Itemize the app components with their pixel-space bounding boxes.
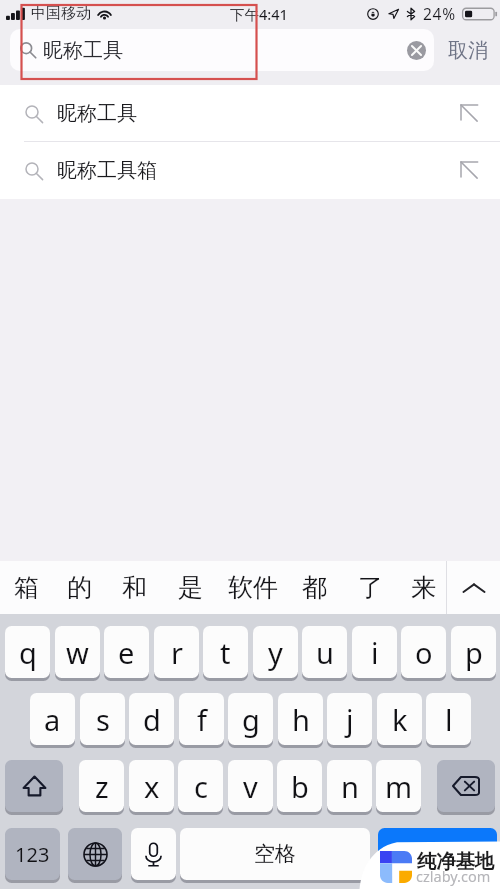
button[interactable]: 空格 [180,828,370,880]
button[interactable]: e [104,626,149,678]
button[interactable]: o [401,626,446,678]
staticText: w [66,633,89,672]
staticText: 都 [302,572,327,603]
button[interactable]: f [179,693,224,745]
button[interactable]: j [327,693,372,745]
staticText: 搜索 [417,841,459,867]
staticText: i [371,633,379,672]
button[interactable]: t [203,626,248,678]
staticText: h [292,700,310,739]
staticText: 了 [358,572,383,603]
staticText: u [316,633,334,672]
button[interactable]: Switch language [68,828,122,880]
button[interactable]: 的 [61,561,97,614]
button[interactable]: Shift [5,760,63,812]
button[interactable]: 都 [296,561,332,614]
staticText: n [341,767,359,806]
staticText: c [194,767,208,806]
button[interactable]: 123 [5,828,60,880]
staticText: 昵称工具 [57,101,137,126]
staticText: s [96,700,110,739]
button[interactable]: 取消 [448,29,500,71]
staticText: a [44,700,61,739]
staticText: f [197,700,207,739]
staticText: g [242,700,260,739]
staticText: 来 [411,572,436,603]
button[interactable]: a [30,693,75,745]
staticText: 24% [423,3,456,24]
button[interactable]: n [327,760,372,812]
staticText: 纯净基地 [417,849,494,874]
staticText: 下午4:41 [230,4,288,24]
button[interactable]: i [352,626,397,678]
staticText: q [19,633,37,672]
button[interactable]: Search [378,828,497,880]
staticText: m [385,767,413,806]
staticText: x [144,767,160,806]
button[interactable]: 昵称工具箱 [0,142,500,199]
staticText: 中国移动 [31,4,91,23]
button[interactable]: 来 [405,561,441,614]
button[interactable]: b [277,760,322,812]
button[interactable]: w [55,626,100,678]
staticText: o [415,633,433,672]
button[interactable]: Clear text [407,41,426,60]
staticText: 箱 [14,572,39,603]
button[interactable]: 了 [352,561,388,614]
staticText: 软件 [228,572,278,603]
button[interactable]: m [376,760,421,812]
staticText: k [392,700,408,739]
staticText: j [346,700,354,739]
staticText: p [465,633,483,672]
button[interactable]: Backspace [437,760,495,812]
staticText: 昵称工具 [43,38,123,63]
staticText: 和 [122,572,147,603]
button[interactable]: z [79,760,124,812]
button[interactable]: Voice input [131,828,176,880]
button[interactable]: v [228,760,273,812]
staticText: d [143,700,161,739]
button[interactable]: y [253,626,298,678]
staticText: 空格 [254,841,296,867]
staticText: l [445,700,453,739]
button[interactable]: l [426,693,471,745]
button[interactable]: 昵称工具 [0,85,500,142]
button[interactable]: p [451,626,496,678]
button[interactable]: Insert suggestion [461,105,478,122]
button[interactable]: 和 [116,561,152,614]
button[interactable]: s [80,693,125,745]
staticText: 是 [178,572,203,603]
button[interactable]: 箱 [8,561,44,614]
button[interactable]: q [5,626,50,678]
button[interactable]: g [228,693,273,745]
staticText: b [291,767,309,806]
staticText: czlaby.com [416,866,491,886]
button[interactable]: u [302,626,347,678]
button[interactable]: c [178,760,223,812]
staticText: e [118,633,135,672]
staticText: 的 [67,572,92,603]
staticText: 取消 [448,38,488,63]
staticText: t [220,633,231,672]
staticText: 昵称工具箱 [57,158,157,183]
button[interactable]: 昵称工具 [10,29,434,71]
button[interactable]: k [377,693,422,745]
button[interactable]: 软件 [223,561,283,614]
staticText: 123 [15,841,50,868]
staticText: z [95,767,109,806]
staticText: y [268,633,283,672]
button[interactable]: Hide keyboard [448,561,500,614]
button[interactable]: r [154,626,199,678]
button[interactable]: h [278,693,323,745]
button[interactable]: 是 [172,561,208,614]
button[interactable]: Insert suggestion [461,162,478,179]
button[interactable]: d [129,693,174,745]
staticText: r [171,633,183,672]
button[interactable]: x [129,760,174,812]
staticText: v [243,767,258,806]
